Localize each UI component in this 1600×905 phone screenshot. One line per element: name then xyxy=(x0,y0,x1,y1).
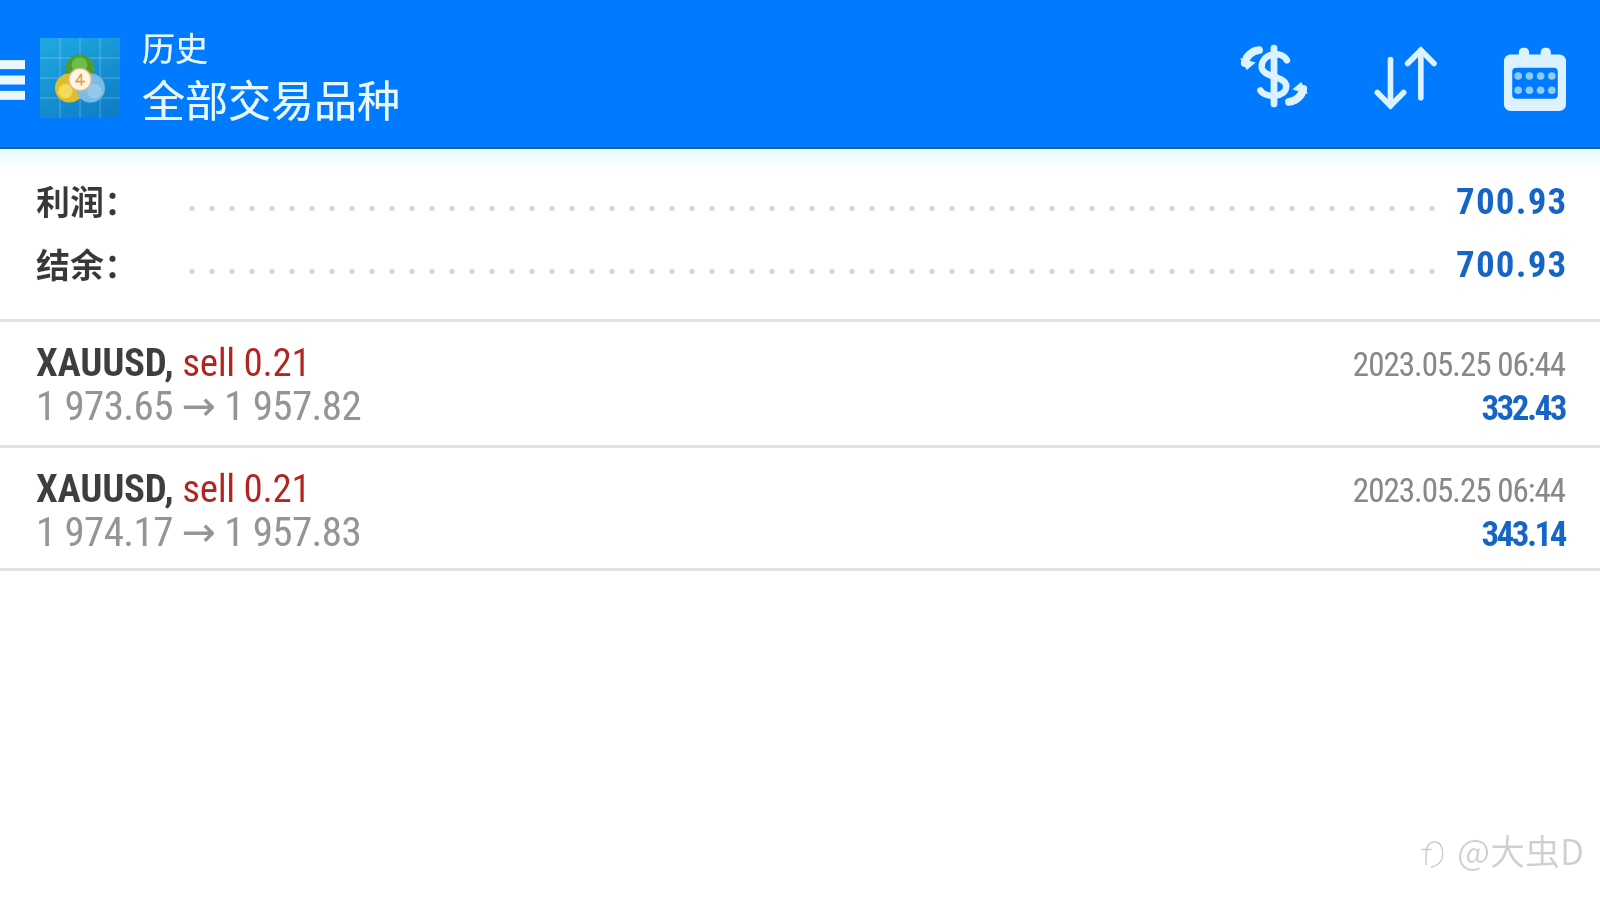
staticText: XAUUSD, sell 0.21 xyxy=(36,340,311,386)
button[interactable]: Select date range xyxy=(1483,0,1587,149)
staticText: 700.93 xyxy=(1456,180,1568,223)
button[interactable]: 历史 xyxy=(32,0,442,149)
staticText: 1 974.17 → 1 957.83 xyxy=(36,508,362,556)
button[interactable]: 利润： xyxy=(0,176,1600,220)
staticText: 2023.05.25 06:44 xyxy=(1352,471,1565,510)
button[interactable]: XAUUSD, sell 0.21 xyxy=(0,322,1600,445)
staticText: XAUUSD, sell 0.21 xyxy=(36,466,311,512)
staticText: 343.14 xyxy=(1481,514,1565,555)
button[interactable]: Sort order xyxy=(1353,0,1457,149)
staticText: @大虫D xyxy=(1457,824,1585,875)
staticText: 结余： xyxy=(36,239,138,283)
staticText: 2023.05.25 06:44 xyxy=(1352,345,1565,384)
button[interactable]: Open navigation menu xyxy=(0,0,32,149)
staticText: 332.43 xyxy=(1481,388,1565,429)
button[interactable]: Currency exchange xyxy=(1222,0,1326,149)
staticText: 全部交易品种 xyxy=(142,67,400,129)
button[interactable]: XAUUSD, sell 0.21 xyxy=(0,448,1600,568)
staticText: 700.93 xyxy=(1456,243,1568,286)
staticText: 1 973.65 → 1 957.82 xyxy=(36,382,362,430)
staticText: 历史 xyxy=(142,23,208,71)
staticText: 利润： xyxy=(36,176,138,220)
button[interactable]: 结余： xyxy=(0,239,1600,283)
